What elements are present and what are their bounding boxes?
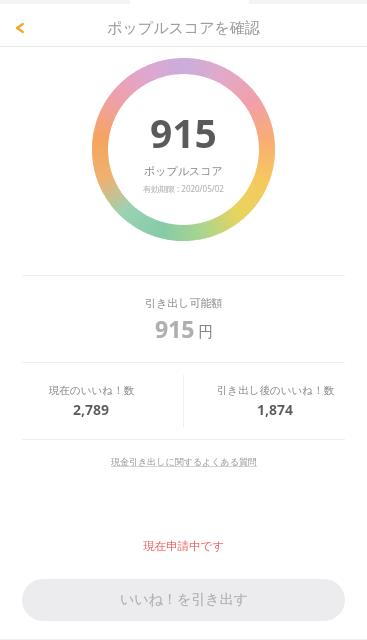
staticText: ポップルスコア (144, 164, 223, 178)
staticText: 2,789 (73, 400, 110, 419)
staticText: 915 (155, 313, 195, 344)
button[interactable]: Back (0, 10, 40, 46)
button[interactable]: いいね！を引き出す (22, 579, 345, 621)
staticText: 915 (150, 106, 217, 159)
staticText: 引き出し後のいいね！数 (217, 384, 334, 397)
staticText: いいね！を引き出す (120, 591, 248, 609)
staticText: 現在のいいね！数 (49, 384, 134, 397)
staticText: 引き出し可能額 (145, 296, 223, 310)
staticText: 現在申請中です (143, 539, 225, 553)
staticText: 円 (198, 323, 213, 342)
staticText: 現金引き出しに関するよくある質問 (111, 456, 257, 467)
button[interactable]: 現金引き出しに関するよくある質問 (107, 454, 261, 469)
staticText: ポップルスコアを確認 (107, 19, 260, 38)
staticText: 1,874 (257, 400, 294, 419)
staticText: 有効期限 : 2020/05/02 (143, 183, 224, 194)
